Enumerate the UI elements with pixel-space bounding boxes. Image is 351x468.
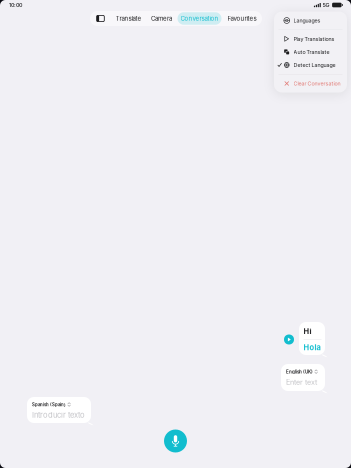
staticText: Camera [151, 15, 172, 22]
staticText: Conversation [180, 15, 218, 22]
button[interactable]: Camera [146, 11, 177, 26]
staticText: Clear Conversation [293, 80, 340, 87]
button[interactable]: Clear Conversation [274, 77, 347, 90]
button[interactable]: Auto Translate [274, 45, 347, 58]
button[interactable]: English (UK) [281, 364, 325, 391]
staticText: English (UK) [286, 369, 313, 374]
button[interactable]: Translate [111, 11, 146, 26]
staticText: Hi [303, 327, 311, 336]
button[interactable]: Spanish (Spain) [27, 397, 91, 423]
staticText: Favourites [227, 15, 256, 22]
staticText: Auto Translate [293, 49, 329, 55]
button[interactable]: Favourites [222, 11, 262, 26]
staticText: Translate [115, 15, 141, 22]
staticText: Languages [293, 17, 320, 24]
staticText: Introducir texto [32, 410, 85, 420]
button[interactable]: Languages [274, 14, 347, 27]
staticText: Play Translations [293, 36, 334, 42]
staticText: Hola [303, 343, 320, 352]
staticText: Enter text [286, 378, 317, 386]
button[interactable]: Detect Language [274, 58, 347, 71]
button[interactable]: Conversation [177, 11, 222, 26]
button[interactable]: Play translation [284, 334, 294, 344]
button[interactable]: Show sidebar [90, 11, 111, 26]
staticText: Detect Language [293, 62, 335, 68]
staticText: 10:00 [9, 2, 22, 8]
staticText: Spanish (Spain) [32, 402, 66, 407]
button[interactable]: Play Translations [274, 32, 347, 45]
button[interactable]: Record [164, 429, 187, 452]
staticText: 5G [323, 2, 330, 8]
